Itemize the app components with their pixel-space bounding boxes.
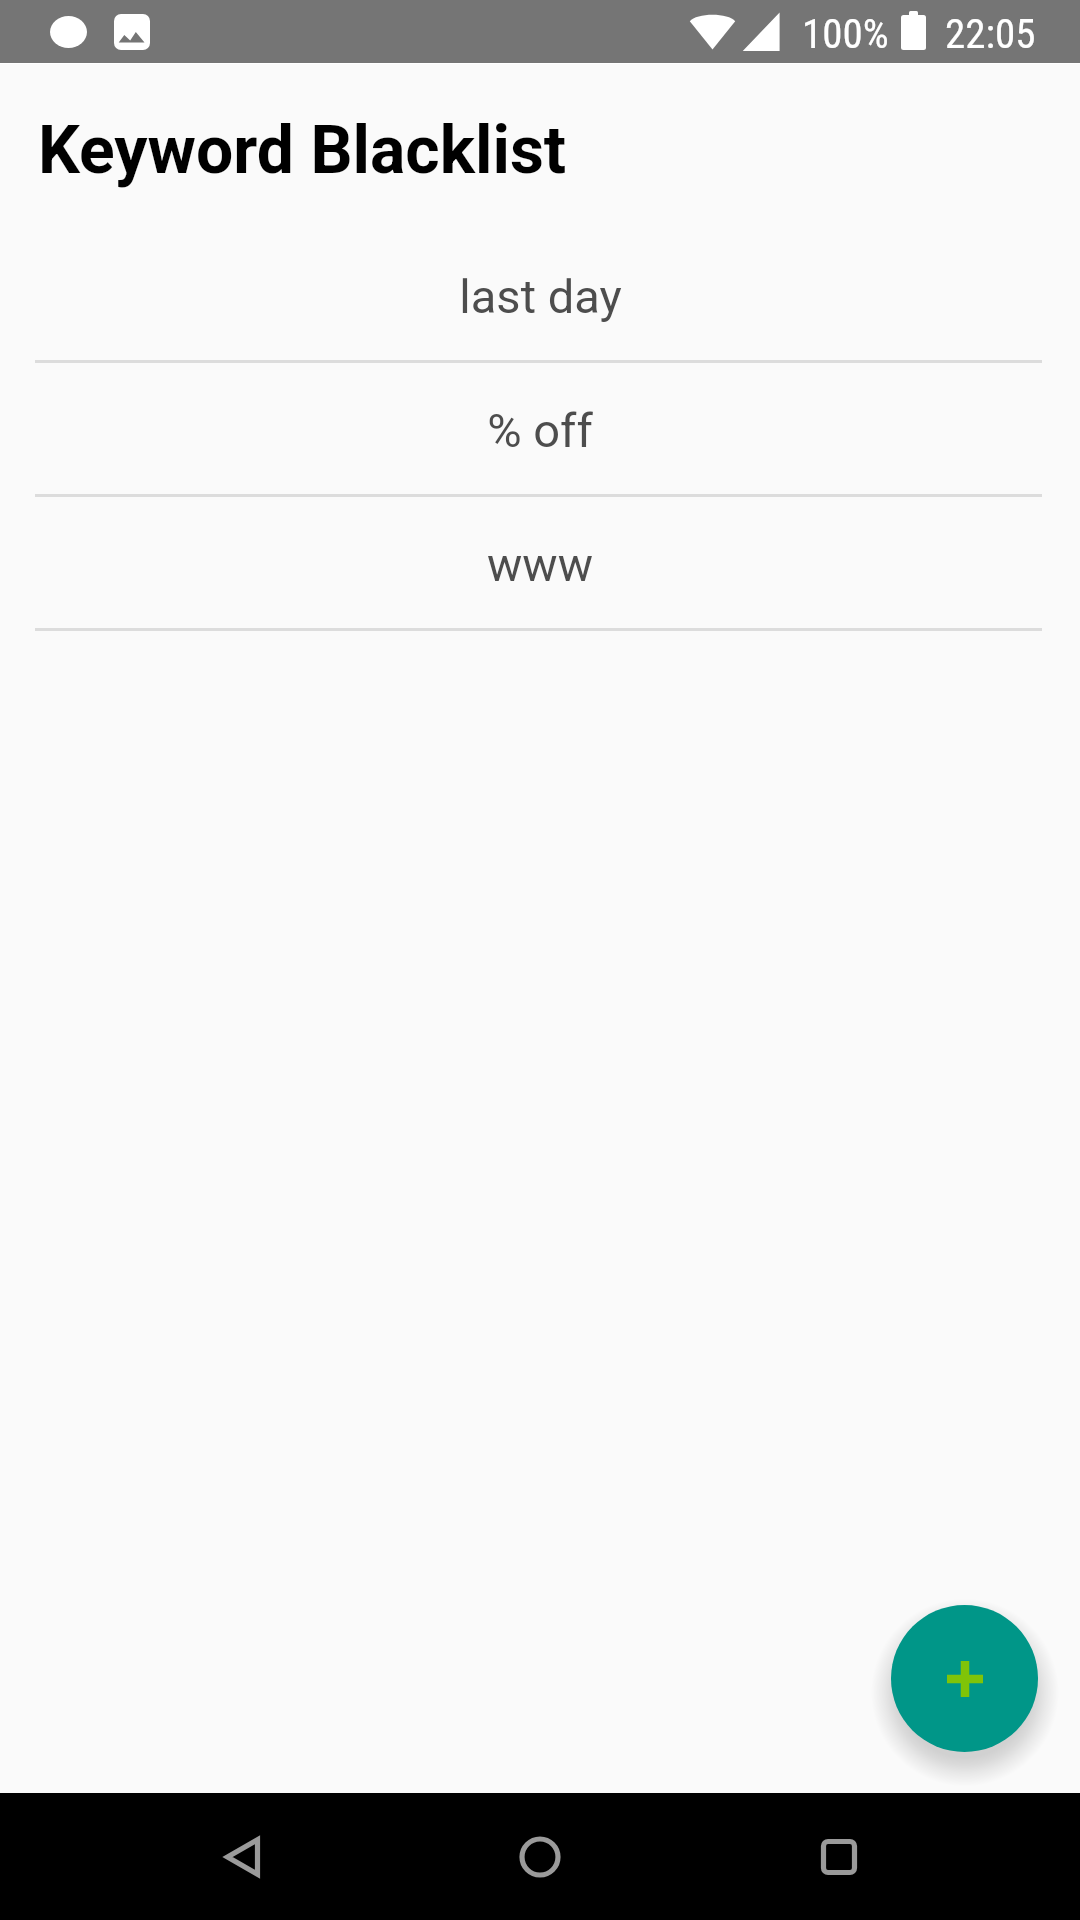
staticText: 22:05: [945, 10, 1036, 58]
button[interactable]: Add keyword: [891, 1605, 1038, 1752]
button[interactable]: Back: [185, 1797, 305, 1917]
button[interactable]: Home: [480, 1797, 600, 1917]
button[interactable]: Recents: [779, 1797, 899, 1917]
button[interactable]: last day: [0, 229, 1080, 363]
staticText: Keyword Blacklist: [38, 112, 567, 189]
button[interactable]: % off: [0, 363, 1080, 497]
staticText: www: [487, 537, 593, 592]
staticText: last day: [459, 269, 622, 324]
staticText: 100%: [802, 10, 889, 58]
staticText: % off: [487, 403, 593, 458]
button[interactable]: www: [0, 497, 1080, 631]
